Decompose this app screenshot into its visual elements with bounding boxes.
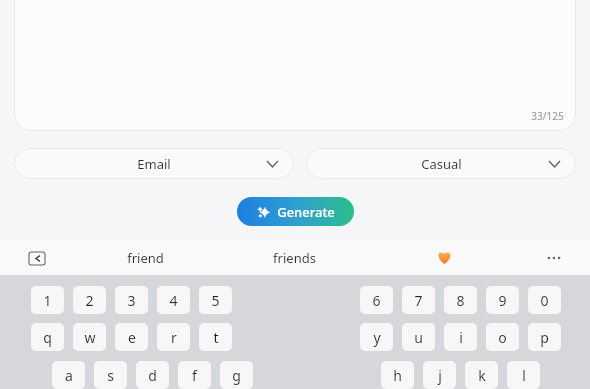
button[interactable]: 9 — [486, 286, 519, 314]
staticText: 33/125 — [531, 109, 564, 123]
staticText: 6 — [372, 291, 381, 310]
button[interactable]: l — [507, 361, 540, 389]
button[interactable]: s — [94, 361, 127, 389]
staticText: 2 — [85, 291, 94, 310]
button[interactable]: f — [178, 361, 211, 389]
button[interactable]: u — [402, 323, 435, 351]
button[interactable]: r — [157, 323, 190, 351]
button[interactable]: d — [136, 361, 169, 389]
button[interactable]: 7 — [402, 286, 435, 314]
staticText: 9 — [498, 291, 507, 310]
button[interactable]: friends — [244, 240, 344, 275]
staticText: a — [65, 366, 73, 385]
button[interactable]: g — [220, 361, 253, 389]
button[interactable]: o — [486, 323, 519, 351]
staticText: k — [478, 366, 486, 385]
staticText: j — [438, 366, 442, 385]
staticText: y — [373, 328, 381, 347]
button[interactable]: e — [115, 323, 148, 351]
button[interactable]: Generate — [237, 197, 354, 226]
staticText: u — [414, 328, 423, 347]
staticText: e — [128, 328, 136, 347]
staticText: q — [43, 328, 52, 347]
staticText: r — [171, 328, 177, 347]
staticText: h — [393, 366, 402, 385]
staticText: 0 — [540, 291, 549, 310]
button[interactable]: q — [31, 323, 64, 351]
staticText: l — [522, 366, 526, 385]
button[interactable]: Orange heart — [430, 240, 458, 275]
button[interactable]: 33/125 — [14, 0, 576, 131]
staticText: t — [213, 328, 219, 347]
button[interactable]: k — [465, 361, 498, 389]
staticText: friend — [127, 249, 164, 267]
button[interactable]: 6 — [360, 286, 393, 314]
button[interactable]: 5 — [199, 286, 232, 314]
button[interactable]: j — [423, 361, 456, 389]
staticText: g — [232, 366, 241, 385]
staticText: friends — [273, 249, 316, 267]
staticText: o — [498, 328, 507, 347]
button[interactable]: p — [528, 323, 561, 351]
staticText: 3 — [127, 291, 136, 310]
staticText: 1 — [43, 291, 52, 310]
staticText: f — [192, 366, 197, 385]
staticText: Email — [137, 155, 171, 173]
staticText: w — [84, 328, 96, 347]
staticText: 8 — [456, 291, 465, 310]
button[interactable]: a — [52, 361, 85, 389]
button[interactable]: friend — [95, 240, 195, 275]
staticText: 5 — [211, 291, 220, 310]
button[interactable]: i — [444, 323, 477, 351]
button[interactable]: More options — [538, 240, 570, 275]
button[interactable]: 0 — [528, 286, 561, 314]
button[interactable]: Previous suggestions — [24, 245, 50, 271]
button[interactable]: w — [73, 323, 106, 351]
staticText: Casual — [421, 155, 462, 173]
button[interactable]: 4 — [157, 286, 190, 314]
button[interactable]: 3 — [115, 286, 148, 314]
button[interactable]: 1 — [31, 286, 64, 314]
button[interactable]: Casual — [306, 148, 576, 179]
button[interactable]: 8 — [444, 286, 477, 314]
button[interactable]: y — [360, 323, 393, 351]
staticText: i — [459, 328, 463, 347]
staticText: s — [107, 366, 114, 385]
staticText: 4 — [169, 291, 178, 310]
staticText: Generate — [277, 203, 335, 221]
staticText: 7 — [414, 291, 423, 310]
staticText: p — [540, 328, 549, 347]
button[interactable]: Email — [14, 148, 294, 179]
staticText: d — [148, 366, 157, 385]
button[interactable]: h — [381, 361, 414, 389]
button[interactable]: t — [199, 323, 232, 351]
button[interactable]: 2 — [73, 286, 106, 314]
